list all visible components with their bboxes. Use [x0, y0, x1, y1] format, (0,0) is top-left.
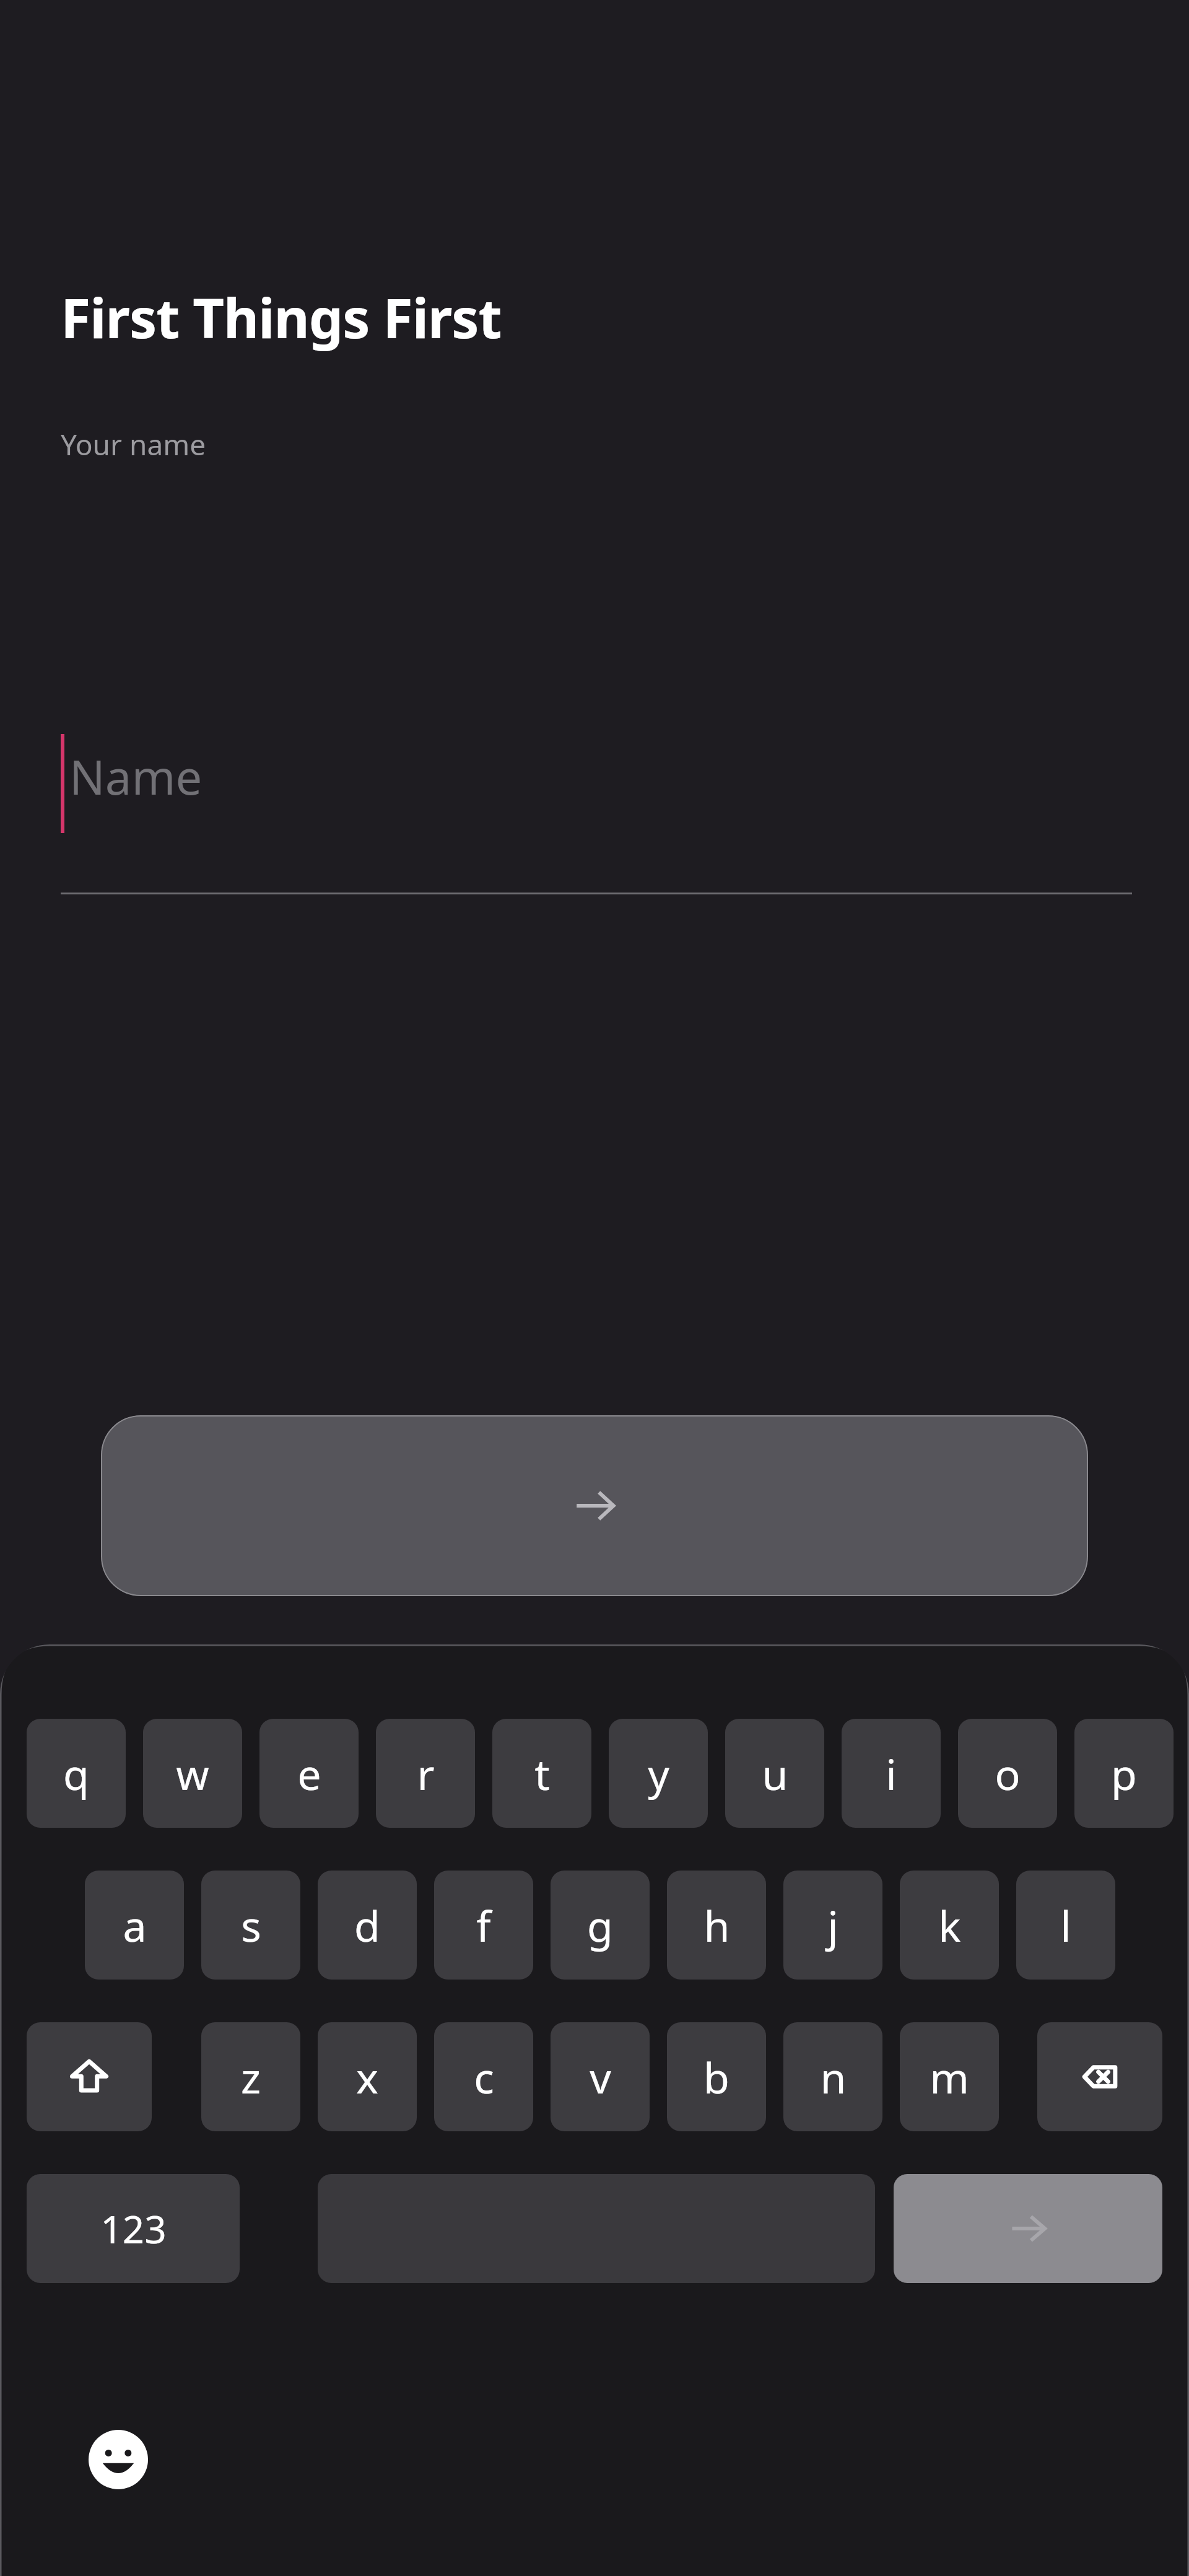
staticText: a	[123, 1897, 147, 1954]
button[interactable]: i	[842, 1719, 941, 1828]
staticText: d	[354, 1897, 380, 1954]
button[interactable]: d	[318, 1871, 417, 1980]
button[interactable]: h	[667, 1871, 766, 1980]
button[interactable]: Name	[61, 718, 1132, 904]
staticText: o	[995, 1745, 1021, 1802]
button[interactable]: u	[725, 1719, 824, 1828]
staticText: v	[590, 2048, 611, 2106]
button[interactable]: q	[27, 1719, 126, 1828]
staticText: r	[417, 1745, 435, 1802]
button[interactable]: f	[434, 1871, 533, 1980]
staticText: n	[820, 2048, 847, 2106]
button[interactable]: Backspace	[1037, 2022, 1162, 2131]
button[interactable]: v	[551, 2022, 650, 2131]
staticText: x	[356, 2048, 378, 2106]
button[interactable]: x	[318, 2022, 417, 2131]
button[interactable]: e	[259, 1719, 359, 1828]
button[interactable]: Continue	[101, 1415, 1088, 1596]
button[interactable]: p	[1074, 1719, 1174, 1828]
button[interactable]: Enter	[894, 2174, 1162, 2283]
button[interactable]: g	[551, 1871, 650, 1980]
staticText: p	[1111, 1745, 1137, 1802]
staticText: h	[703, 1897, 730, 1954]
staticText: m	[930, 2048, 969, 2106]
staticText: z	[241, 2048, 261, 2106]
button[interactable]: o	[958, 1719, 1057, 1828]
staticText: b	[703, 2048, 730, 2106]
button[interactable]: m	[900, 2022, 999, 2131]
staticText: k	[938, 1897, 961, 1954]
button[interactable]: z	[201, 2022, 300, 2131]
button[interactable]: n	[783, 2022, 882, 2131]
button[interactable]: Shift	[27, 2022, 152, 2131]
staticText: w	[176, 1745, 209, 1802]
button[interactable]: k	[900, 1871, 999, 1980]
staticText: j	[827, 1897, 838, 1954]
button[interactable]: s	[201, 1871, 300, 1980]
button[interactable]: c	[434, 2022, 533, 2131]
button[interactable]: a	[85, 1871, 184, 1980]
button[interactable]: b	[667, 2022, 766, 2131]
button[interactable]: 123	[27, 2174, 240, 2283]
staticText: First Things First	[61, 280, 502, 354]
staticText: q	[63, 1745, 89, 1802]
staticText: i	[886, 1745, 897, 1802]
staticText: e	[297, 1745, 321, 1802]
button[interactable]: r	[376, 1719, 475, 1828]
staticText: u	[762, 1745, 788, 1802]
staticText: l	[1060, 1897, 1071, 1954]
staticText: y	[648, 1745, 669, 1802]
staticText: s	[241, 1897, 261, 1954]
staticText: 123	[100, 2203, 167, 2255]
staticText: f	[476, 1897, 491, 1954]
button[interactable]: t	[492, 1719, 591, 1828]
button[interactable]: j	[783, 1871, 882, 1980]
staticText: g	[587, 1897, 613, 1954]
staticText: c	[474, 2048, 494, 2106]
button[interactable]: w	[143, 1719, 242, 1828]
staticText: Your name	[61, 425, 206, 464]
staticText: t	[534, 1745, 550, 1802]
button[interactable]: Emoji keyboard	[85, 2427, 151, 2492]
button[interactable]: y	[609, 1719, 708, 1828]
staticText: Name	[69, 744, 203, 809]
button[interactable]: l	[1016, 1871, 1115, 1980]
